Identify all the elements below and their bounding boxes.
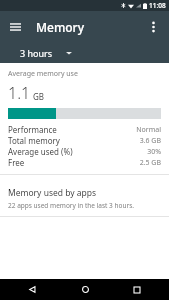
staticText: 3.6 GB xyxy=(139,136,161,146)
button[interactable]: Memory used by apps xyxy=(0,181,169,216)
button[interactable]: More options xyxy=(138,11,169,42)
staticText: Performance xyxy=(8,124,57,135)
staticText: 2.5 GB xyxy=(139,158,161,168)
staticText: Memory xyxy=(36,19,85,35)
staticText: 30% xyxy=(147,147,161,157)
staticText: Memory used by apps xyxy=(8,187,97,199)
staticText: GB xyxy=(33,91,45,102)
staticText: Normal xyxy=(136,125,161,135)
staticText: 22 apps used memory in the last 3 hours. xyxy=(8,201,134,210)
staticText: 1.1 xyxy=(8,82,31,104)
staticText: Average used (%) xyxy=(8,146,73,157)
staticText: Average memory use xyxy=(8,69,78,79)
button[interactable]: 3 hours xyxy=(16,44,76,62)
button[interactable]: Home xyxy=(65,279,105,300)
staticText: Total memory xyxy=(8,135,60,146)
button[interactable]: Recent apps xyxy=(117,279,157,300)
button[interactable]: Back xyxy=(12,279,52,300)
button[interactable]: Open navigation drawer xyxy=(0,11,31,42)
staticText: Free xyxy=(8,157,25,168)
staticText: 3 hours xyxy=(20,47,53,59)
staticText: 11:08 xyxy=(149,1,166,10)
button[interactable]: Average memory use xyxy=(0,63,169,174)
